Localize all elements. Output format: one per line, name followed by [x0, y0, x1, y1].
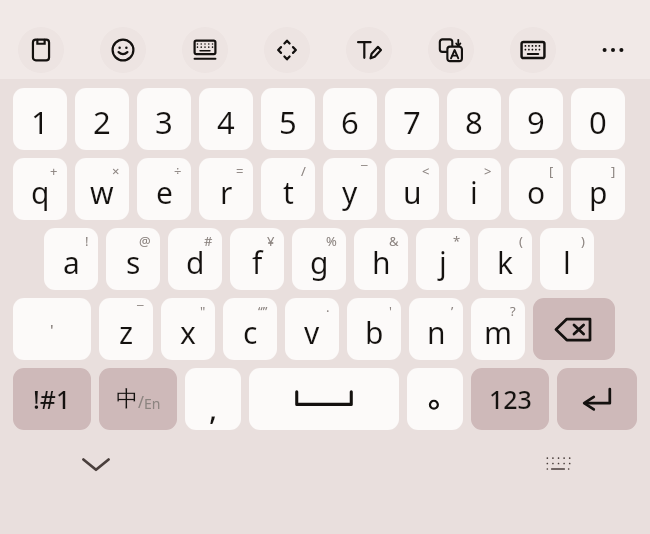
button[interactable]: i: [447, 158, 501, 220]
staticText: a: [63, 242, 80, 283]
staticText: y: [342, 172, 358, 213]
staticText: ·: [326, 302, 330, 320]
button[interactable]: Move cursor: [264, 27, 310, 73]
button[interactable]: Space: [249, 368, 399, 430]
button[interactable]: Translate: [428, 27, 474, 73]
button[interactable]: Switch keyboard: [510, 27, 556, 73]
button[interactable]: q: [13, 158, 67, 220]
button[interactable]: 1: [13, 88, 67, 150]
staticText: ¥: [267, 232, 275, 250]
button[interactable]: Enter: [557, 368, 637, 430]
button[interactable]: 7: [385, 88, 439, 150]
button[interactable]: x: [161, 298, 215, 360]
staticText: b: [365, 312, 384, 353]
staticText: !#1: [33, 382, 71, 416]
staticText: 9: [527, 101, 545, 143]
button[interactable]: g: [292, 228, 346, 290]
staticText: t: [283, 172, 294, 213]
button[interactable]: Keyboard settings: [536, 448, 580, 480]
staticText: ?: [510, 302, 516, 320]
staticText: s: [126, 242, 141, 283]
staticText: ,: [209, 388, 218, 429]
staticText: n: [427, 312, 446, 353]
staticText: f: [252, 242, 263, 283]
button[interactable]: !#1: [13, 368, 91, 430]
staticText: %: [326, 232, 337, 250]
staticText: @: [139, 232, 151, 250]
staticText: [: [549, 162, 554, 180]
staticText: ': [389, 302, 392, 320]
staticText: q: [31, 172, 50, 213]
staticText: g: [310, 242, 329, 283]
staticText: ‾: [137, 302, 144, 320]
staticText: ÷: [174, 162, 182, 180]
staticText: h: [372, 242, 391, 283]
button[interactable]: u: [385, 158, 439, 220]
button[interactable]: z: [99, 298, 153, 360]
staticText: ]: [611, 162, 616, 180]
button[interactable]: l: [540, 228, 594, 290]
staticText: 123: [489, 382, 532, 416]
staticText: !: [85, 232, 89, 250]
button[interactable]: v: [285, 298, 339, 360]
staticText: /: [301, 162, 306, 180]
staticText: 4: [217, 101, 235, 143]
button[interactable]: n: [409, 298, 463, 360]
button[interactable]: Backspace: [533, 298, 615, 360]
button[interactable]: More options: [590, 27, 636, 73]
button[interactable]: b: [347, 298, 401, 360]
button[interactable]: 5: [261, 88, 315, 150]
button[interactable]: t: [261, 158, 315, 220]
staticText: i: [470, 172, 478, 213]
staticText: 8: [465, 101, 483, 143]
button[interactable]: 3: [137, 88, 191, 150]
button[interactable]: ': [13, 298, 91, 360]
button[interactable]: f: [230, 228, 284, 290]
button[interactable]: ,: [185, 368, 241, 430]
button[interactable]: y: [323, 158, 377, 220]
staticText: l: [563, 242, 571, 283]
staticText: >: [484, 162, 492, 180]
button[interactable]: Keyboard layout: [182, 27, 228, 73]
staticText: o: [527, 172, 546, 213]
button[interactable]: m: [471, 298, 525, 360]
button[interactable]: 123: [471, 368, 549, 430]
button[interactable]: 中: [99, 368, 177, 430]
button[interactable]: e: [137, 158, 191, 220]
button[interactable]: Emoji: [100, 27, 146, 73]
button[interactable]: d: [168, 228, 222, 290]
staticText: u: [403, 172, 422, 213]
staticText: e: [156, 172, 173, 213]
button[interactable]: 0: [571, 88, 625, 150]
button[interactable]: w: [75, 158, 129, 220]
button[interactable]: Clipboard: [18, 27, 64, 73]
button[interactable]: o: [509, 158, 563, 220]
button[interactable]: 4: [199, 88, 253, 150]
staticText: “”: [258, 302, 268, 320]
staticText: 2: [93, 101, 111, 143]
staticText: ': [50, 319, 54, 339]
staticText: ×: [112, 162, 120, 180]
button[interactable]: Handwriting: [346, 27, 392, 73]
staticText: 6: [341, 101, 359, 143]
staticText: 中: [116, 385, 138, 413]
button[interactable]: h: [354, 228, 408, 290]
staticText: =: [236, 162, 244, 180]
staticText: +: [50, 162, 58, 180]
button[interactable]: p: [571, 158, 625, 220]
button[interactable]: r: [199, 158, 253, 220]
button[interactable]: 9: [509, 88, 563, 150]
button[interactable]: Hide keyboard: [72, 448, 120, 480]
button[interactable]: 6: [323, 88, 377, 150]
staticText: c: [243, 312, 258, 353]
button[interactable]: [407, 368, 463, 430]
staticText: #: [204, 232, 213, 250]
button[interactable]: k: [478, 228, 532, 290]
button[interactable]: 2: [75, 88, 129, 150]
button[interactable]: c: [223, 298, 277, 360]
button[interactable]: j: [416, 228, 470, 290]
staticText: k: [497, 242, 514, 283]
button[interactable]: a: [44, 228, 98, 290]
button[interactable]: s: [106, 228, 160, 290]
button[interactable]: 8: [447, 88, 501, 150]
